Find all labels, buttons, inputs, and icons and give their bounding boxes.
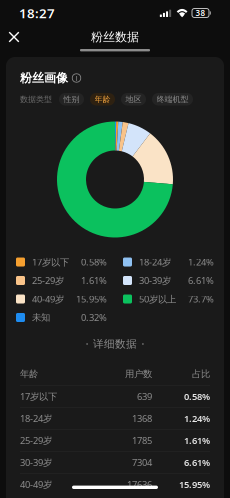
staticText: 粉丝画像 <box>20 71 68 85</box>
button[interactable]: 终端机型 <box>152 93 193 105</box>
staticText: 0.58% <box>184 390 210 403</box>
staticText: 30-39岁 <box>139 274 171 287</box>
staticText: 年龄 <box>94 94 110 104</box>
staticText: 15.95% <box>76 293 107 305</box>
staticText: 6.61% <box>188 274 214 287</box>
staticText: 17岁以下 <box>32 256 69 268</box>
staticText: 639 <box>137 390 152 403</box>
staticText: 1.24% <box>188 256 214 268</box>
staticText: 18:27 <box>19 4 55 22</box>
staticText: 73.7% <box>188 293 214 305</box>
staticText: 1.24% <box>184 412 210 425</box>
staticText: 30-39岁 <box>20 456 52 469</box>
staticText: 详细数据 <box>93 337 137 350</box>
staticText: 18-24岁 <box>20 412 52 425</box>
staticText: 性别 <box>63 94 79 104</box>
button[interactable]: 年龄 <box>90 93 115 105</box>
staticText: 终端机型 <box>156 94 188 104</box>
staticText: 18-24岁 <box>139 256 171 268</box>
staticText: 0.58% <box>81 256 107 268</box>
staticText: 1.61% <box>184 434 210 447</box>
staticText: 用户数 <box>125 368 152 380</box>
staticText: 40-49岁 <box>32 293 64 305</box>
staticText: 数据类型 <box>20 94 52 104</box>
button[interactable]: 地区 <box>121 93 146 105</box>
staticText: 地区 <box>125 94 141 104</box>
staticText: 占比 <box>192 368 210 380</box>
staticText: 50岁以上 <box>139 293 176 305</box>
staticText: 17岁以下 <box>20 390 57 403</box>
staticText: 38 <box>195 8 205 18</box>
staticText: 25-29岁 <box>32 274 64 287</box>
staticText: 未知 <box>32 312 50 323</box>
staticText: i <box>75 73 77 83</box>
staticText: 17636 <box>127 478 152 491</box>
staticText: 粉丝数据 <box>91 30 139 44</box>
staticText: 1785 <box>132 434 152 447</box>
button[interactable]: 性别 <box>59 93 84 105</box>
staticText: 年龄 <box>20 368 38 380</box>
staticText: 40-49岁 <box>20 478 52 491</box>
staticText: 25-29岁 <box>20 434 52 447</box>
staticText: 0.32% <box>81 311 107 324</box>
staticText: 15.95% <box>179 478 210 491</box>
staticText: 1368 <box>132 412 152 425</box>
staticText: 6.61% <box>184 456 210 469</box>
button[interactable]: Close <box>0 25 28 49</box>
staticText: 1.61% <box>81 274 107 287</box>
staticText: 7304 <box>132 456 152 469</box>
